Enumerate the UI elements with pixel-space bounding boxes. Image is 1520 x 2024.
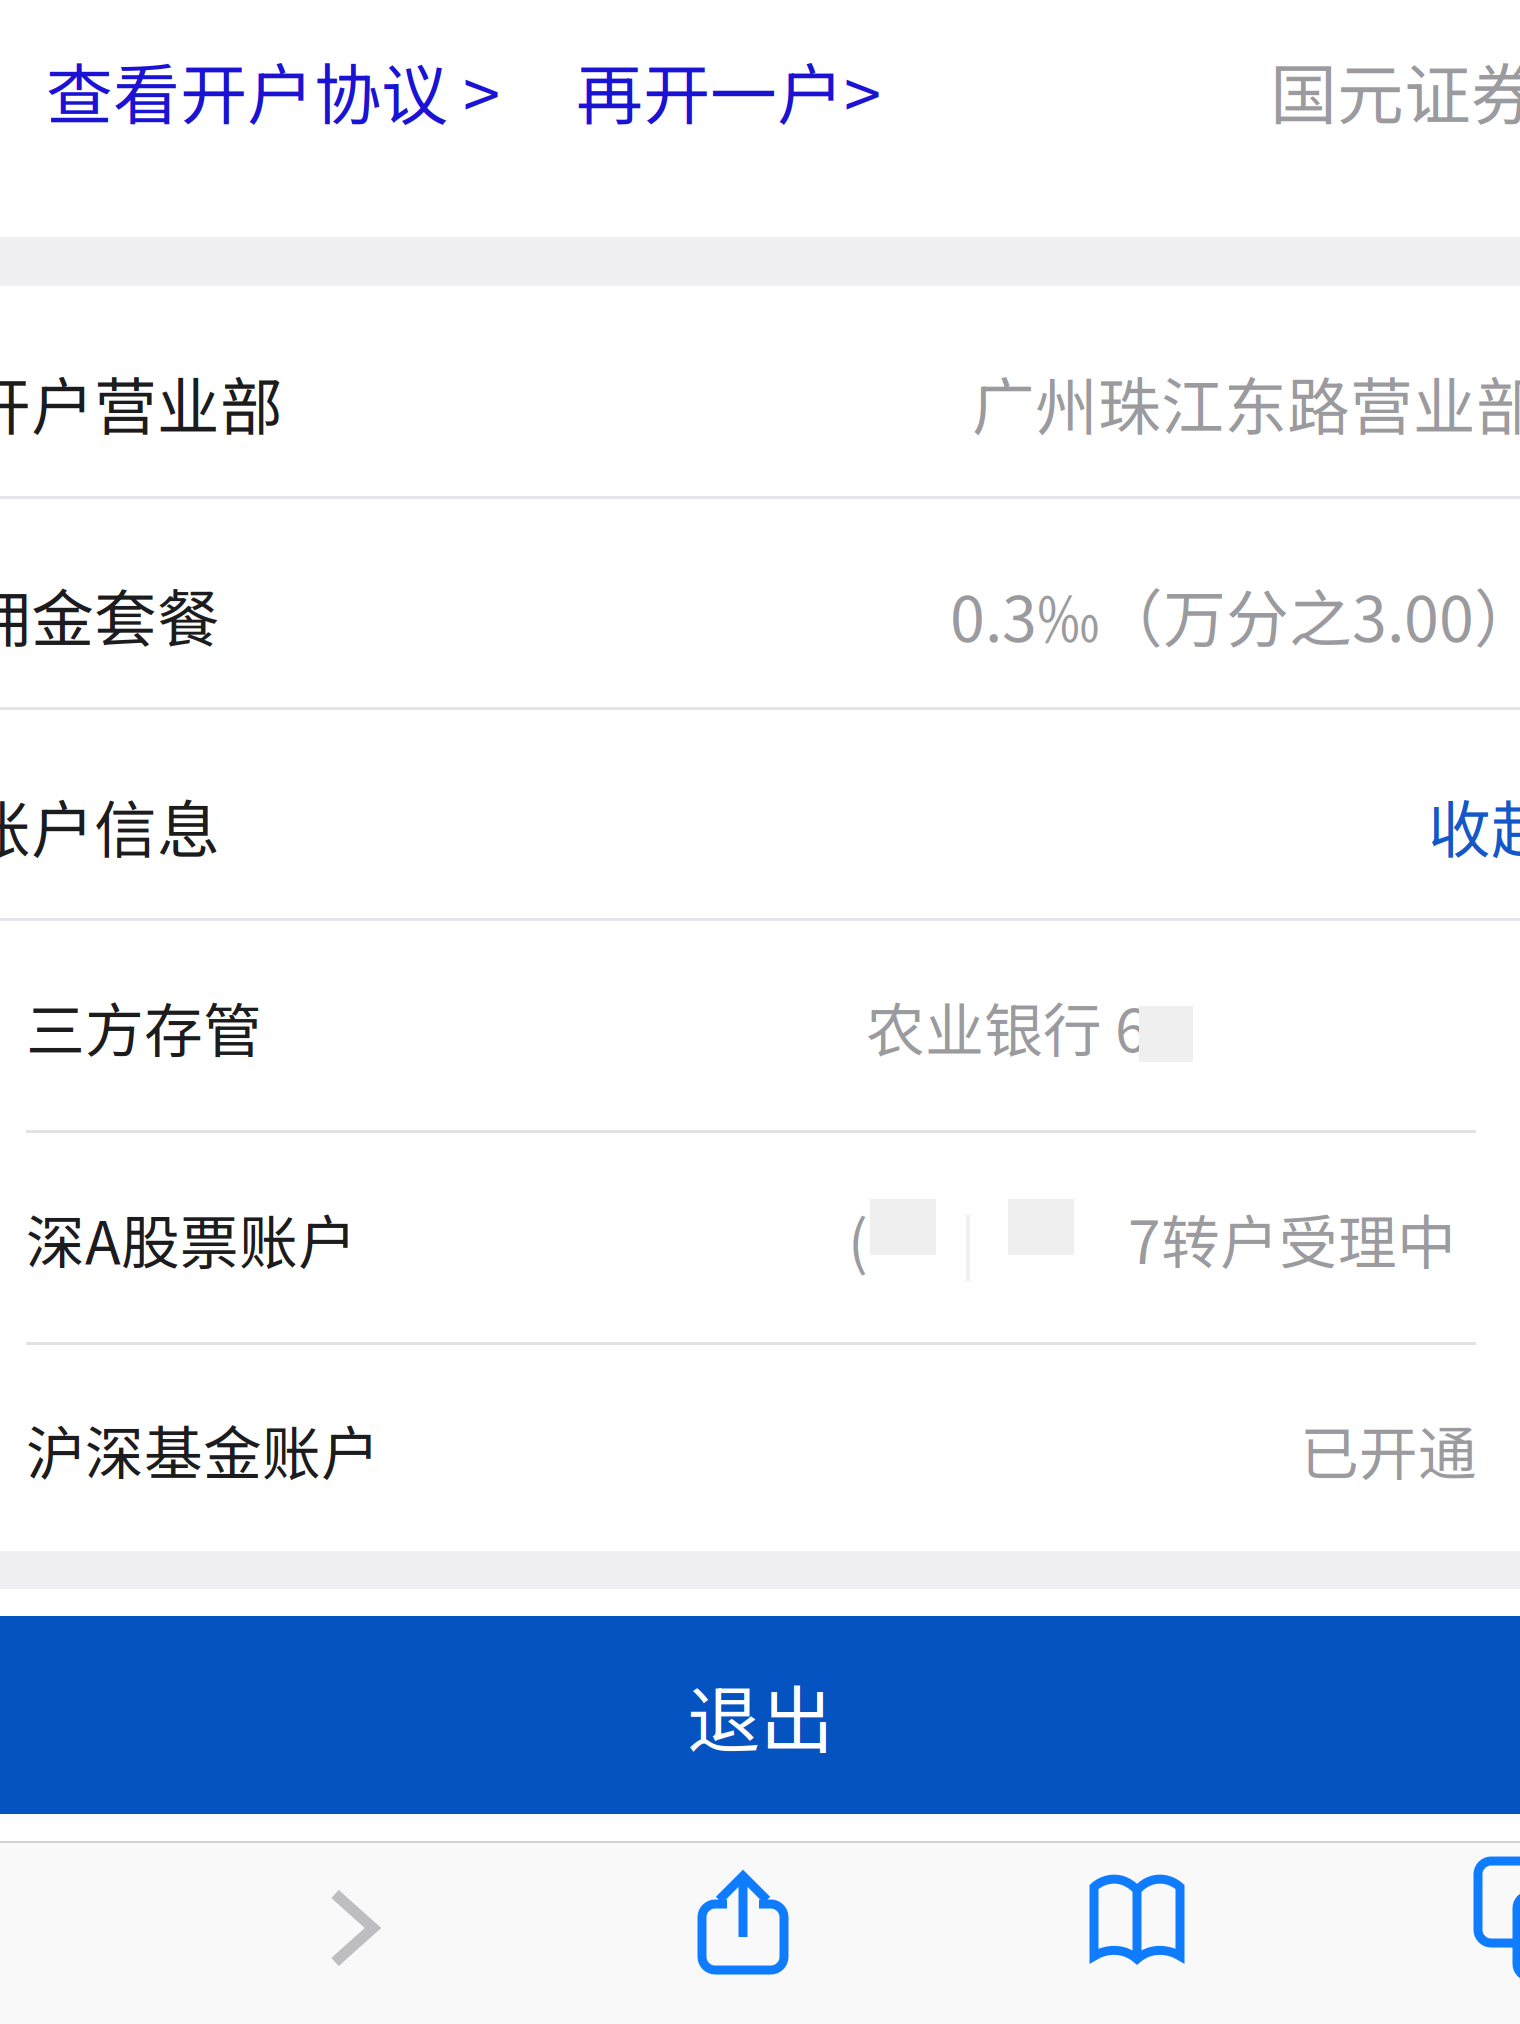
staticText: 沪深基金账户 [26,1407,380,1492]
button[interactable]: Tabs [1473,1856,1520,1996]
staticText: 退出 [687,1662,833,1768]
button[interactable]: Forward [285,1863,425,1993]
button[interactable]: 退出 [0,1616,1520,1814]
button[interactable]: 再开一户> [510,36,891,144]
staticText: 广州珠江东路营业部 [972,357,1520,448]
staticText: 开户营业部 [0,357,283,448]
button[interactable]: Share [668,1858,818,1988]
button[interactable]: Bookmarks [1062,1858,1212,1988]
staticText: 农业银行 6 [866,984,1148,1069]
staticText: ( [848,1196,868,1281]
staticText: 已开通 [1300,1407,1477,1492]
staticText: 国元证券 [1270,42,1520,138]
staticText: 佣金套餐 [0,569,220,660]
staticText: 三方存管 [26,984,262,1069]
button[interactable]: 收起 [1418,770,1520,881]
staticText: 0.3‰（万分之3.00） [950,569,1520,660]
staticText: 深A股票账户 [26,1196,357,1281]
staticText: 再开一户> [576,42,881,138]
button[interactable]: 查看开户协议 > [0,36,510,144]
staticText: 账户信息 [0,780,220,871]
staticText: 查看开户协议 > [46,42,500,138]
staticText: 7转户受理中 [1128,1196,1456,1281]
staticText: | [960,1196,976,1281]
staticText: 收起 [1428,780,1520,871]
